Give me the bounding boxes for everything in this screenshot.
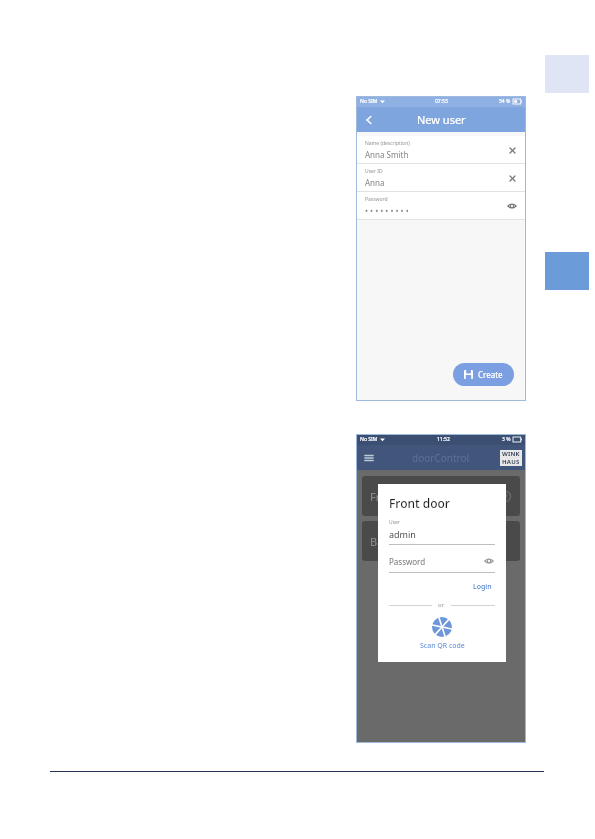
staticText: Front door [370, 489, 425, 504]
staticText: Password [365, 196, 388, 203]
button[interactable]: Scan QR code [389, 617, 495, 651]
staticText: 11:52 [437, 436, 450, 443]
button[interactable]: Password [356, 192, 526, 219]
button[interactable]: User [389, 519, 495, 545]
staticText: • • • • • • • • • [365, 205, 409, 216]
staticText: Back door [370, 534, 422, 549]
staticText: Create [478, 369, 503, 380]
button[interactable]: Front door [362, 476, 520, 516]
staticText: Front door [389, 495, 450, 511]
button[interactable]: Show password [483, 555, 495, 567]
staticText: Anna [365, 177, 385, 188]
staticText: Name (description) [365, 140, 410, 147]
staticText: No SIM [360, 98, 378, 105]
staticText: WINK [502, 450, 520, 458]
staticText: No SIM [360, 436, 378, 443]
button[interactable]: Back [360, 111, 378, 129]
staticText: New user [417, 112, 466, 127]
button[interactable]: User ID [356, 164, 526, 191]
staticText: 07:53 [435, 98, 448, 105]
staticText: 3 % [502, 436, 511, 443]
button[interactable]: Back door [362, 521, 520, 561]
button[interactable]: Login [470, 580, 495, 594]
button[interactable]: Password [389, 555, 495, 573]
button[interactable]: Clear [505, 171, 519, 185]
button[interactable]: Clear [505, 143, 519, 157]
staticText: HAUS [502, 458, 520, 466]
staticText: Password [389, 556, 483, 567]
button[interactable]: Create [453, 363, 514, 386]
staticText: User [389, 519, 400, 526]
staticText: 54 % [499, 98, 511, 105]
staticText: Anna Smith [365, 149, 409, 160]
staticText: or [438, 601, 445, 609]
staticText: doorControl [412, 451, 470, 465]
staticText: User ID [365, 168, 383, 175]
staticText: Scan QR code [420, 641, 465, 651]
button[interactable]: Menu [360, 449, 378, 467]
button[interactable]: Show password [505, 199, 519, 213]
staticText: admin [389, 528, 416, 540]
staticText: Login [473, 582, 492, 592]
button[interactable]: Name (description) [356, 136, 526, 163]
